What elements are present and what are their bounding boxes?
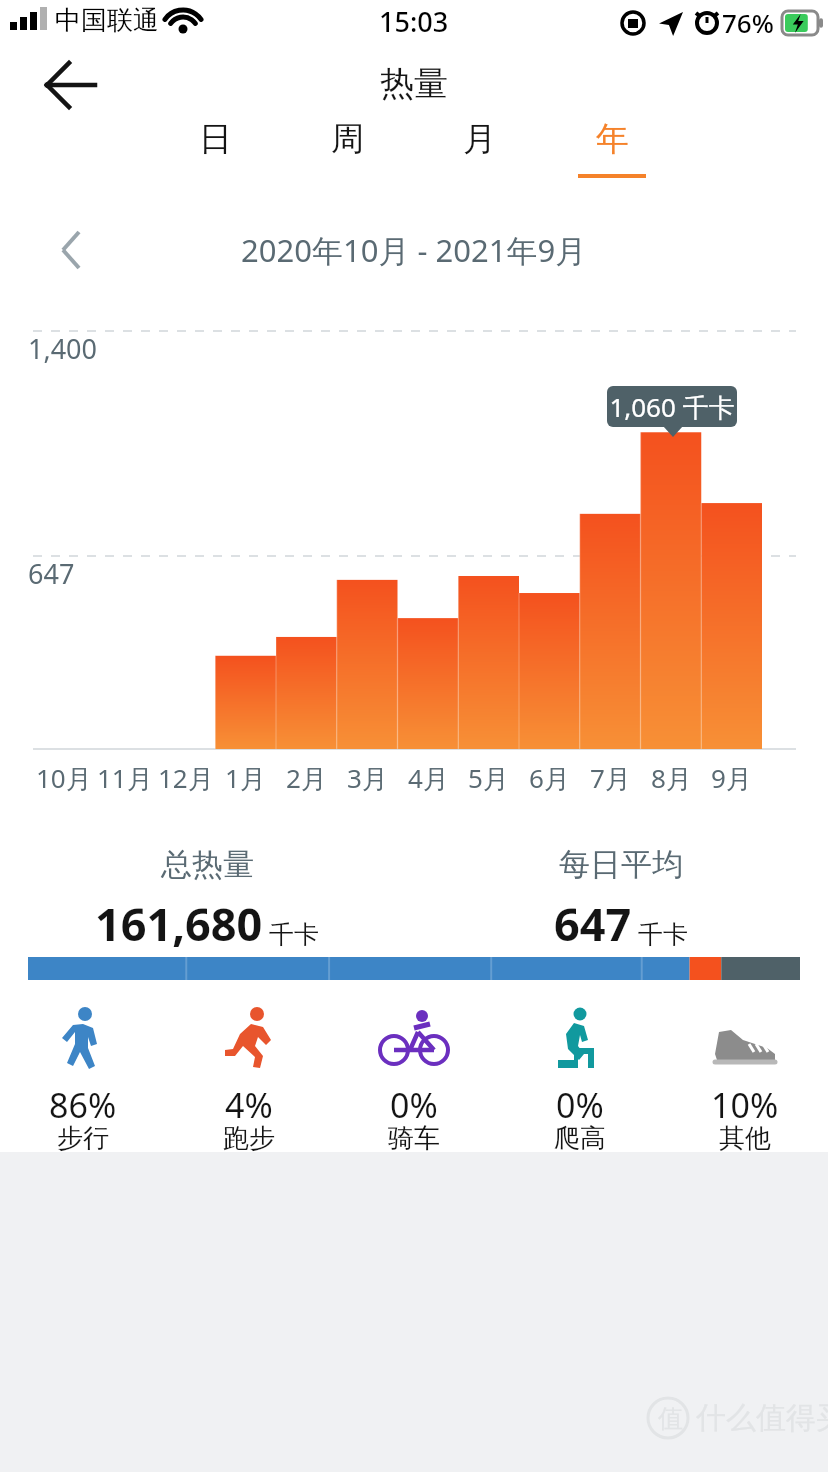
staticText: 9月 <box>711 760 752 796</box>
button[interactable]: 月 <box>429 118 529 180</box>
staticText: 周 <box>331 118 364 160</box>
button[interactable]: 86% <box>0 1000 166 1150</box>
button[interactable]: 总热量 <box>0 845 414 955</box>
staticText: 12月 <box>158 760 214 796</box>
staticText: 76% <box>722 5 774 40</box>
staticText: 0% <box>556 1082 604 1128</box>
staticText: 1月 <box>225 760 266 796</box>
staticText: 0% <box>390 1082 438 1128</box>
staticText: 3月 <box>347 760 388 796</box>
button[interactable]: 0% <box>331 1000 497 1150</box>
staticText: 11月 <box>97 760 153 796</box>
staticText: 热量 <box>380 62 448 105</box>
staticText: 4月 <box>408 760 449 796</box>
button[interactable]: 0% <box>497 1000 663 1150</box>
staticText: 值 <box>658 1403 683 1434</box>
staticText: 千卡 <box>269 919 319 950</box>
staticText: 6月 <box>529 760 570 796</box>
staticText: 跑步 <box>223 1122 275 1155</box>
staticText: 每日平均 <box>559 845 683 884</box>
staticText: 什么值得买 <box>696 1399 828 1437</box>
staticText: 647 <box>28 555 75 592</box>
staticText: 月 <box>463 118 496 160</box>
staticText: 日 <box>199 118 232 160</box>
staticText: 年 <box>596 118 629 160</box>
staticText: 总热量 <box>161 845 254 884</box>
staticText: 1,060 千卡 <box>609 389 735 425</box>
button[interactable]: 10% <box>662 1000 828 1150</box>
staticText: 步行 <box>57 1122 109 1155</box>
staticText: 2月 <box>286 760 327 796</box>
staticText: 4% <box>225 1082 273 1128</box>
staticText: 161,680 <box>95 893 263 954</box>
button[interactable]: 周 <box>297 118 397 180</box>
staticText: 千卡 <box>638 919 688 950</box>
staticText: 647 <box>554 893 632 954</box>
staticText: 其他 <box>719 1122 771 1155</box>
button[interactable]: Back <box>28 54 112 116</box>
staticText: 86% <box>49 1082 117 1128</box>
staticText: 8月 <box>651 760 692 796</box>
button[interactable]: 每日平均 <box>414 845 828 955</box>
button[interactable]: 4% <box>166 1000 332 1150</box>
button[interactable]: Previous period <box>36 215 106 285</box>
staticText: 10% <box>711 1082 779 1128</box>
button[interactable]: 日 <box>165 118 265 180</box>
staticText: 1,400 <box>28 330 98 367</box>
staticText: 中国联通 <box>55 4 159 37</box>
staticText: 骑车 <box>388 1122 440 1155</box>
staticText: 2020年10月 - 2021年9月 <box>241 229 587 271</box>
staticText: 5月 <box>468 760 509 796</box>
staticText: 7月 <box>590 760 631 796</box>
staticText: 10月 <box>36 760 92 796</box>
button[interactable]: 年 <box>562 118 662 180</box>
staticText: 15:03 <box>379 3 449 40</box>
staticText: 爬高 <box>554 1122 606 1155</box>
